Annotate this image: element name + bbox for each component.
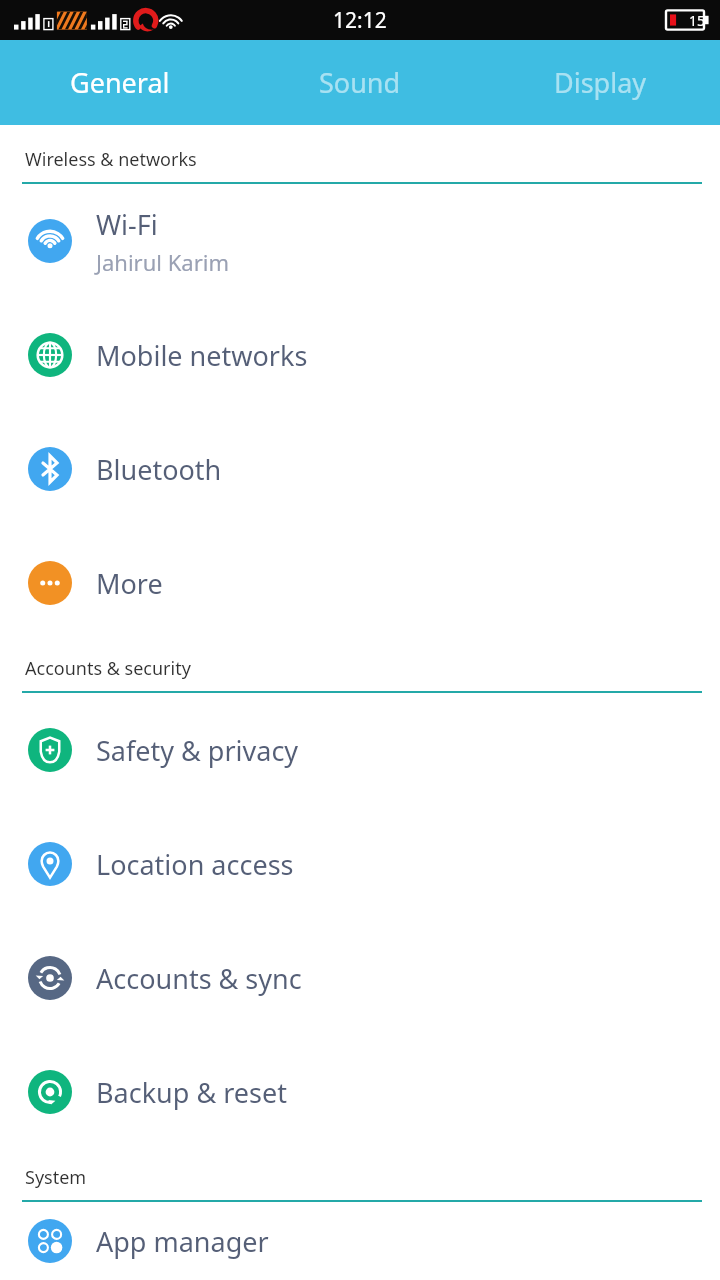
other: Accounts & sync [28,956,72,1000]
staticText: Jahirul Karim [96,247,229,277]
button[interactable]: Mobile networks [0,298,720,412]
button[interactable]: Safety & privacy [0,693,720,807]
staticText: App manager [96,1223,269,1260]
other: Bluetooth [28,447,72,491]
other: App manager [28,1219,72,1263]
staticText: Display [554,64,647,101]
staticText: Accounts & security [25,656,191,681]
staticText: Wireless & networks [25,147,197,172]
button[interactable]: General [0,40,240,125]
staticText: Accounts & sync [96,960,302,997]
other: Backup & reset [28,1070,72,1114]
staticText: Location access [96,846,294,883]
button[interactable]: Wi-Fi [0,184,720,298]
button[interactable]: Backup & reset [0,1035,720,1149]
staticText: More [96,565,163,602]
button[interactable]: Sound [240,40,480,125]
other: Wi-Fi [28,219,72,263]
other: Location access [28,842,72,886]
staticText: Sound [319,64,401,101]
staticText: 15 [689,11,706,30]
staticText: Safety & privacy [96,732,299,769]
button[interactable]: More [0,526,720,640]
staticText: Bluetooth [96,451,222,488]
other: Safety & privacy [28,728,72,772]
staticText: Wi-Fi [96,206,158,243]
staticText: Mobile networks [96,337,308,374]
button[interactable]: App manager [0,1202,720,1280]
staticText: System [25,1165,87,1190]
button[interactable]: Display [480,40,720,125]
staticText: Backup & reset [96,1074,287,1111]
staticText: 12:12 [333,6,387,35]
other: Mobile networks [28,333,72,377]
staticText: General [70,64,170,101]
other: More [28,561,72,605]
button[interactable]: Bluetooth [0,412,720,526]
button[interactable]: Location access [0,807,720,921]
button[interactable]: Accounts & sync [0,921,720,1035]
